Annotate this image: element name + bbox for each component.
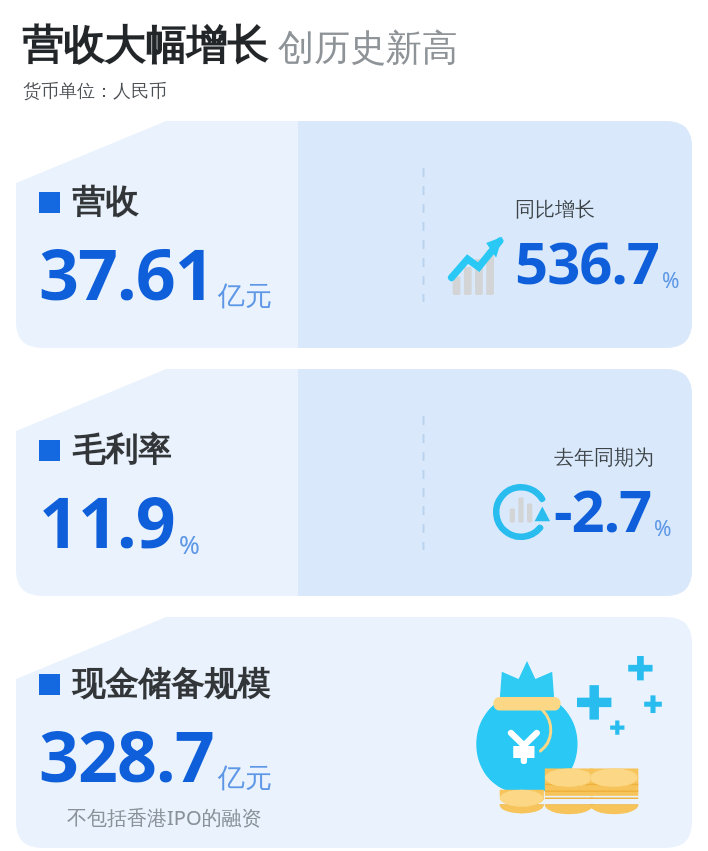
staticText: 毛利率 xyxy=(72,429,171,471)
staticText: 创历史新高 xyxy=(278,25,458,70)
staticText: % xyxy=(179,527,200,561)
staticText: 37.61 xyxy=(39,225,214,320)
staticText: 亿元 xyxy=(218,279,272,313)
staticText: 货币单位：人民币 xyxy=(23,80,167,103)
staticText: -2.7 xyxy=(554,470,652,549)
button[interactable]: 毛利率 xyxy=(16,369,692,596)
staticText: 营收 xyxy=(72,181,138,223)
staticText: % xyxy=(654,514,672,543)
staticText: 现金储备规模 xyxy=(72,663,270,705)
staticText: 亿元 xyxy=(218,761,272,795)
button[interactable]: Cash reserves xyxy=(16,617,692,848)
staticText: 328.7 xyxy=(39,707,214,802)
staticText: % xyxy=(662,266,680,295)
staticText: 去年同期为 xyxy=(554,445,654,470)
staticText: 营收大幅增长 xyxy=(22,20,268,72)
staticText: 同比增长 xyxy=(515,197,595,222)
button[interactable]: 营收 xyxy=(16,121,692,348)
staticText: 536.7 xyxy=(515,222,660,301)
staticText: 不包括香港IPO的融资 xyxy=(67,804,262,831)
staticText: 11.9 xyxy=(39,473,175,568)
other: Cash reserves xyxy=(464,643,674,823)
